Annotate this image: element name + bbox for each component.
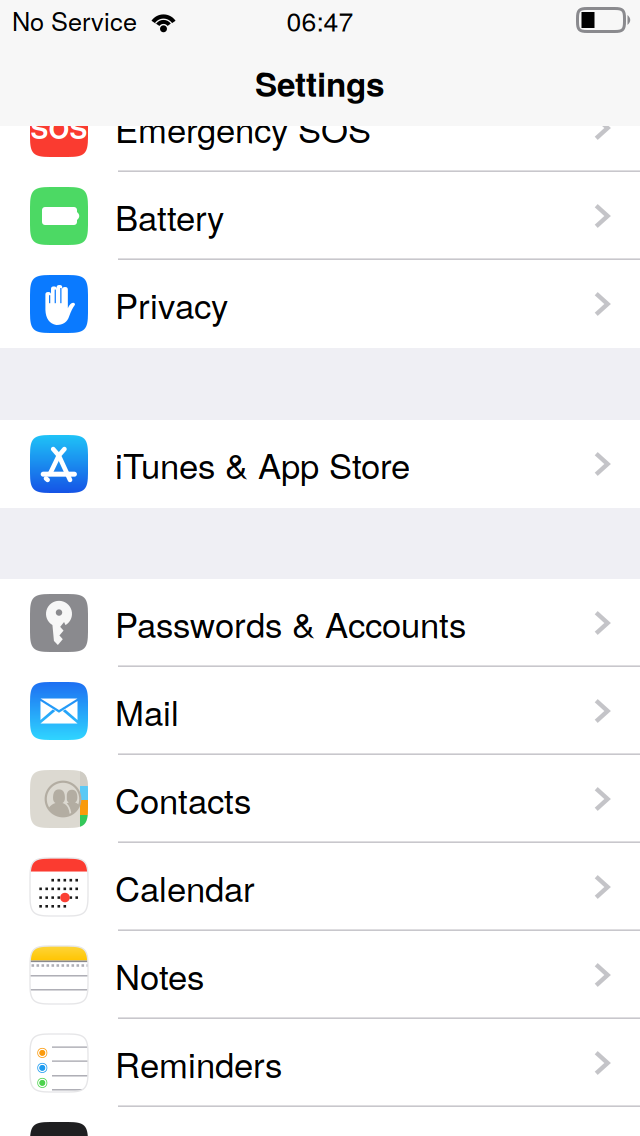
button[interactable]: Calendar bbox=[0, 843, 640, 931]
button[interactable]: Voice Memos bbox=[0, 1107, 640, 1136]
button[interactable]: Mail bbox=[0, 667, 640, 755]
button[interactable]: Notes bbox=[0, 931, 640, 1019]
staticText: Calendar bbox=[115, 862, 255, 912]
staticText: Settings bbox=[255, 59, 385, 107]
staticText: iTunes & App Store bbox=[115, 439, 410, 489]
staticText: Privacy bbox=[115, 279, 228, 329]
button[interactable]: iTunes & App Store bbox=[0, 420, 640, 508]
button[interactable]: SOS bbox=[0, 84, 640, 172]
button[interactable]: Battery bbox=[0, 172, 640, 260]
button[interactable]: Passwords & Accounts bbox=[0, 579, 640, 667]
staticText: Emergency SOS bbox=[115, 103, 371, 153]
staticText: Battery bbox=[115, 191, 224, 241]
button[interactable]: Contacts bbox=[0, 755, 640, 843]
staticText: Contacts bbox=[115, 774, 251, 824]
staticText: No Service bbox=[12, 2, 137, 38]
staticText: Reminders bbox=[115, 1038, 282, 1088]
staticText: Passwords & Accounts bbox=[115, 598, 466, 648]
staticText: 06:47 bbox=[286, 1, 353, 39]
staticText: Notes bbox=[115, 950, 204, 1000]
button[interactable]: Reminders bbox=[0, 1019, 640, 1107]
staticText: Mail bbox=[115, 686, 179, 736]
staticText: SOS bbox=[30, 109, 87, 147]
button[interactable]: Privacy bbox=[0, 260, 640, 348]
